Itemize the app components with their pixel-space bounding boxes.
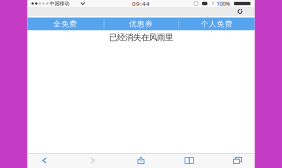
staticText: 100% [217, 0, 231, 7]
button[interactable]: Forward [76, 153, 110, 168]
button[interactable]: 个人免费 [179, 17, 254, 30]
staticText: 中国移动 [49, 0, 69, 7]
button[interactable]: Back [27, 153, 61, 168]
button[interactable]: Reload page [234, 7, 245, 15]
button[interactable]: Bookmarks [172, 153, 206, 168]
staticText: 全免费 [53, 19, 77, 29]
button[interactable]: Share [124, 153, 158, 168]
staticText: 个人免费 [201, 19, 233, 29]
staticText: 优惠券 [129, 19, 153, 29]
staticText: 已经消失在风雨里 [109, 32, 173, 43]
button[interactable]: 优惠券 [103, 17, 179, 30]
staticText: 09:44 [132, 0, 150, 8]
button[interactable]: 全免费 [27, 17, 103, 30]
button[interactable]: Tabs [220, 153, 254, 168]
